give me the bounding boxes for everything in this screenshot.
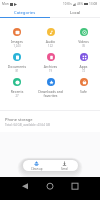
staticText: 19 bbox=[34, 69, 67, 73]
button[interactable]: Send bbox=[50, 161, 78, 171]
staticText: Total: 64 GB, available: 43.64 GB bbox=[5, 123, 50, 127]
staticText: 27 bbox=[0, 94, 34, 98]
button[interactable]: Images bbox=[0, 28, 34, 48]
staticText: 46% bbox=[77, 2, 83, 6]
staticText: Local bbox=[70, 10, 81, 16]
staticText: 35 bbox=[67, 44, 100, 48]
staticText: 1,243 bbox=[0, 44, 34, 48]
staticText: Archives bbox=[34, 64, 67, 69]
staticText: Phone storage bbox=[5, 117, 33, 122]
button[interactable]: Downloads and favorites bbox=[34, 78, 67, 98]
other: System navigation bbox=[0, 177, 100, 200]
staticText: Videos bbox=[67, 39, 100, 44]
staticText: Downloads and favorites bbox=[34, 89, 67, 98]
button[interactable]: Videos bbox=[67, 28, 100, 48]
button[interactable]: Apps bbox=[67, 53, 100, 73]
staticText: Send bbox=[61, 167, 68, 171]
button[interactable]: Safe bbox=[67, 78, 100, 94]
staticText: Images bbox=[0, 39, 34, 44]
staticText: 72 bbox=[67, 69, 100, 73]
staticText: 10 K/s bbox=[63, 2, 72, 6]
button[interactable]: Audio bbox=[34, 28, 67, 48]
button[interactable]: Recents bbox=[0, 78, 34, 98]
button[interactable]: Clean up bbox=[23, 161, 50, 171]
staticText: 81 bbox=[0, 69, 34, 73]
staticText: Mon bbox=[2, 2, 9, 6]
staticText: Categories bbox=[14, 10, 36, 16]
button[interactable]: Archives bbox=[34, 53, 67, 73]
button[interactable]: Categories bbox=[0, 8, 50, 17]
button[interactable]: Phone storage bbox=[0, 111, 100, 132]
staticText: 13:08 bbox=[89, 2, 98, 6]
staticText: 122 bbox=[34, 44, 67, 48]
staticText: Recents bbox=[0, 89, 34, 94]
button[interactable]: Documents bbox=[0, 53, 34, 73]
staticText: Documents bbox=[0, 64, 34, 69]
staticText: Safe bbox=[67, 89, 100, 94]
staticText: Audio bbox=[34, 39, 67, 44]
staticText: Clean up bbox=[31, 167, 43, 171]
button[interactable]: Local bbox=[50, 8, 100, 17]
staticText: Apps bbox=[67, 64, 100, 69]
